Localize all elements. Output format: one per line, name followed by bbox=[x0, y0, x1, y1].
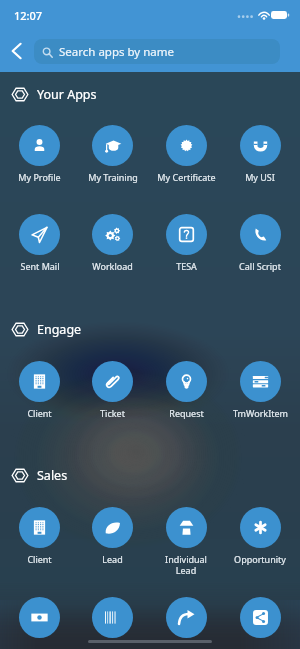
button[interactable]: Opportunity bbox=[223, 507, 297, 565]
other: Client bbox=[19, 507, 60, 548]
staticText: Call Script bbox=[239, 260, 281, 272]
other: SHARE bbox=[240, 597, 281, 638]
other: My Profile bbox=[19, 125, 60, 166]
staticText: TmWorkItem bbox=[233, 407, 288, 419]
button[interactable]: TESA bbox=[149, 214, 223, 272]
staticText: Your Apps bbox=[37, 86, 97, 103]
button[interactable]: Sent Mail bbox=[3, 214, 76, 272]
staticText: Lead bbox=[102, 553, 123, 565]
other: Workload bbox=[92, 214, 133, 255]
staticText: Search apps by name bbox=[59, 44, 174, 60]
other: Request bbox=[166, 361, 207, 402]
staticText: Ticket bbox=[100, 407, 125, 419]
button[interactable]: Search apps by name bbox=[34, 39, 280, 64]
other: FORWARD bbox=[166, 597, 207, 638]
other: Client bbox=[19, 361, 60, 402]
button[interactable]: Individual Lead bbox=[149, 507, 223, 577]
staticText: My USI bbox=[245, 171, 275, 183]
button[interactable]: Ticket bbox=[76, 361, 149, 419]
button[interactable]: Client bbox=[3, 507, 76, 565]
other: My Training bbox=[92, 125, 133, 166]
button[interactable]: My Certificate bbox=[149, 125, 223, 183]
staticText: My Training bbox=[88, 171, 138, 183]
other: Opportunity bbox=[240, 507, 281, 548]
staticText: Individual Lead bbox=[165, 553, 207, 577]
button[interactable]: Workload bbox=[76, 214, 149, 272]
other: My USI bbox=[240, 125, 281, 166]
other: BARCODE bbox=[92, 597, 133, 638]
staticText: Sent Mail bbox=[20, 260, 60, 272]
other: MONEY bbox=[19, 597, 60, 638]
button[interactable]: My Profile bbox=[3, 125, 76, 183]
staticText: My Certificate bbox=[157, 171, 216, 183]
button[interactable]: Client bbox=[3, 361, 76, 419]
staticText: Sales bbox=[37, 467, 68, 484]
staticText: 12:07 bbox=[14, 8, 43, 23]
staticText: Client bbox=[27, 407, 52, 419]
staticText: My Profile bbox=[18, 171, 61, 183]
staticText: Workload bbox=[92, 260, 133, 272]
staticText: Opportunity bbox=[234, 553, 286, 565]
other: Lead bbox=[92, 507, 133, 548]
button[interactable]: BARCODE bbox=[76, 597, 149, 638]
staticText: Request bbox=[169, 407, 204, 419]
other: Sent Mail bbox=[19, 214, 60, 255]
staticText: TESA bbox=[176, 260, 197, 272]
button[interactable]: Call Script bbox=[223, 214, 297, 272]
button[interactable]: Request bbox=[149, 361, 223, 419]
other: Call Script bbox=[240, 214, 281, 255]
button[interactable]: My Training bbox=[76, 125, 149, 183]
button[interactable]: MONEY bbox=[3, 597, 76, 638]
other: Individual Lead bbox=[166, 507, 207, 548]
other: TmWorkItem bbox=[240, 361, 281, 402]
button[interactable]: Lead bbox=[76, 507, 149, 565]
button[interactable]: Back bbox=[0, 30, 34, 72]
button[interactable]: FORWARD bbox=[149, 597, 223, 638]
staticText: Client bbox=[27, 553, 52, 565]
staticText: Engage bbox=[37, 321, 82, 338]
other: My Certificate bbox=[166, 125, 207, 166]
button[interactable]: My USI bbox=[223, 125, 297, 183]
other: Ticket bbox=[92, 361, 133, 402]
other: TESA bbox=[166, 214, 207, 255]
button[interactable]: SHARE bbox=[223, 597, 297, 638]
button[interactable]: TmWorkItem bbox=[223, 361, 297, 419]
